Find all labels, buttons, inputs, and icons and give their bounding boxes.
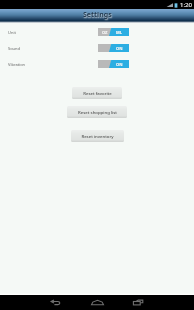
button[interactable]: Recent apps [126, 295, 149, 310]
staticText: Reset favorite [83, 90, 112, 96]
staticText: Reset shopping list [78, 109, 117, 115]
button[interactable]: ON [98, 60, 129, 68]
button[interactable]: OZ [98, 28, 129, 36]
staticText: Sound [8, 46, 21, 51]
staticText: ON [116, 46, 123, 51]
staticText: 1:20 [180, 1, 192, 9]
staticText: ML [116, 30, 123, 35]
staticText: ON [116, 62, 123, 67]
button[interactable]: Home [86, 295, 109, 310]
button[interactable]: Reset shopping list [67, 106, 127, 118]
staticText: Reset inventory [81, 133, 114, 139]
staticText: Settings [83, 10, 112, 20]
button[interactable]: Sound [0, 43, 194, 53]
button[interactable]: Back [44, 295, 67, 310]
button[interactable]: ON [98, 44, 129, 52]
button[interactable]: Reset inventory [71, 130, 124, 142]
button[interactable]: Vibration [0, 59, 194, 69]
staticText: Unit [8, 30, 16, 35]
staticText: Vibration [8, 62, 26, 67]
button[interactable]: Unit [0, 27, 194, 37]
button[interactable]: Reset favorite [72, 87, 122, 99]
staticText: OZ [102, 30, 108, 35]
